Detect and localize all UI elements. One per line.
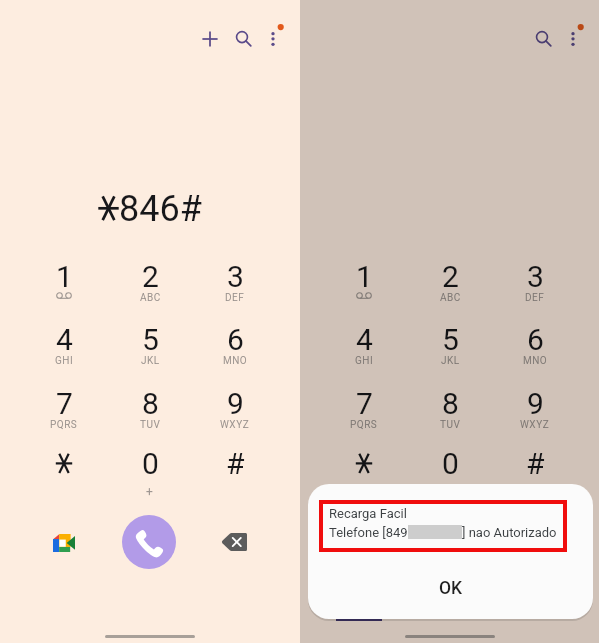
staticText: TUV [140, 419, 161, 431]
button[interactable]: 8 [418, 378, 482, 434]
button[interactable]: 3 [203, 251, 267, 307]
staticText: 8 [142, 386, 159, 421]
staticText: 9 [527, 386, 544, 421]
button[interactable]: Backspace [222, 533, 247, 551]
button[interactable]: 0 [118, 438, 182, 494]
button[interactable]: Search [522, 17, 562, 57]
button[interactable] [332, 438, 396, 494]
staticText: # [526, 446, 545, 481]
button[interactable]: More options [553, 19, 593, 59]
staticText: 1 [56, 259, 73, 294]
staticText: 7 [356, 386, 373, 421]
button[interactable]: 1 [332, 251, 396, 307]
staticText: PQRS [350, 419, 378, 431]
button[interactable]: # [503, 438, 567, 494]
staticText: MNO [523, 355, 548, 367]
button[interactable]: 0 [418, 438, 482, 494]
button[interactable]: More options [253, 19, 293, 59]
button[interactable]: 3 [503, 251, 567, 307]
button[interactable]: Add contact [190, 19, 230, 59]
staticText: 6 [227, 322, 244, 357]
button[interactable]: 6 [503, 314, 567, 370]
button[interactable]: 1 [32, 251, 96, 307]
staticText: WXYZ [520, 419, 550, 431]
button[interactable]: OK [308, 568, 593, 612]
button[interactable]: 9 [503, 378, 567, 434]
staticText: PQRS [50, 419, 78, 431]
staticText: ABC [440, 292, 461, 304]
button[interactable]: Call [422, 515, 476, 569]
staticText: ABC [140, 292, 161, 304]
staticText: 4 [356, 322, 373, 357]
button[interactable]: 9 [203, 378, 267, 434]
button[interactable]: Video call [353, 534, 375, 552]
staticText: # [226, 446, 245, 481]
staticText: + [146, 485, 154, 499]
button[interactable]: 2 [418, 251, 482, 307]
staticText: OK [439, 578, 463, 599]
button[interactable]: 2 [118, 251, 182, 307]
button[interactable]: 4 [32, 314, 96, 370]
staticText: 6 [527, 322, 544, 357]
staticText: 2 [442, 259, 459, 294]
staticText: 846# [119, 188, 202, 230]
staticText: GHI [55, 355, 74, 367]
staticText: 0 [442, 446, 459, 481]
staticText: 1 [356, 259, 373, 294]
staticText: TUV [440, 419, 461, 431]
staticText: ] nao Autorizado [462, 525, 557, 540]
staticText: JKL [441, 355, 460, 367]
button[interactable]: 5 [118, 314, 182, 370]
button[interactable]: 5 [418, 314, 482, 370]
staticText: DEF [225, 292, 245, 304]
staticText: Recarga Facil [329, 506, 407, 521]
staticText: DEF [525, 292, 545, 304]
staticText: 3 [527, 259, 544, 294]
button[interactable]: 4 [332, 314, 396, 370]
button[interactable] [32, 438, 96, 494]
staticText: 2 [142, 259, 159, 294]
staticText: 0 [142, 446, 159, 481]
staticText: GHI [355, 355, 374, 367]
button[interactable]: 7 [332, 378, 396, 434]
staticText: JKL [141, 355, 160, 367]
staticText: WXYZ [220, 419, 250, 431]
staticText: 3 [227, 259, 244, 294]
staticText: 5 [442, 322, 459, 357]
staticText: 8 [442, 386, 459, 421]
button[interactable]: 6 [203, 314, 267, 370]
staticText: MNO [223, 355, 248, 367]
button[interactable]: Search [222, 17, 262, 57]
button[interactable]: Video call [53, 534, 75, 552]
staticText: 9 [227, 386, 244, 421]
staticText: 5 [142, 322, 159, 357]
button[interactable]: Call [122, 515, 176, 569]
button[interactable]: 8 [118, 378, 182, 434]
button[interactable]: 7 [32, 378, 96, 434]
staticText: Telefone [849 [329, 525, 408, 540]
button[interactable]: Backspace [522, 533, 547, 551]
button[interactable]: # [203, 438, 267, 494]
staticText: 4 [56, 322, 73, 357]
staticText: 7 [56, 386, 73, 421]
